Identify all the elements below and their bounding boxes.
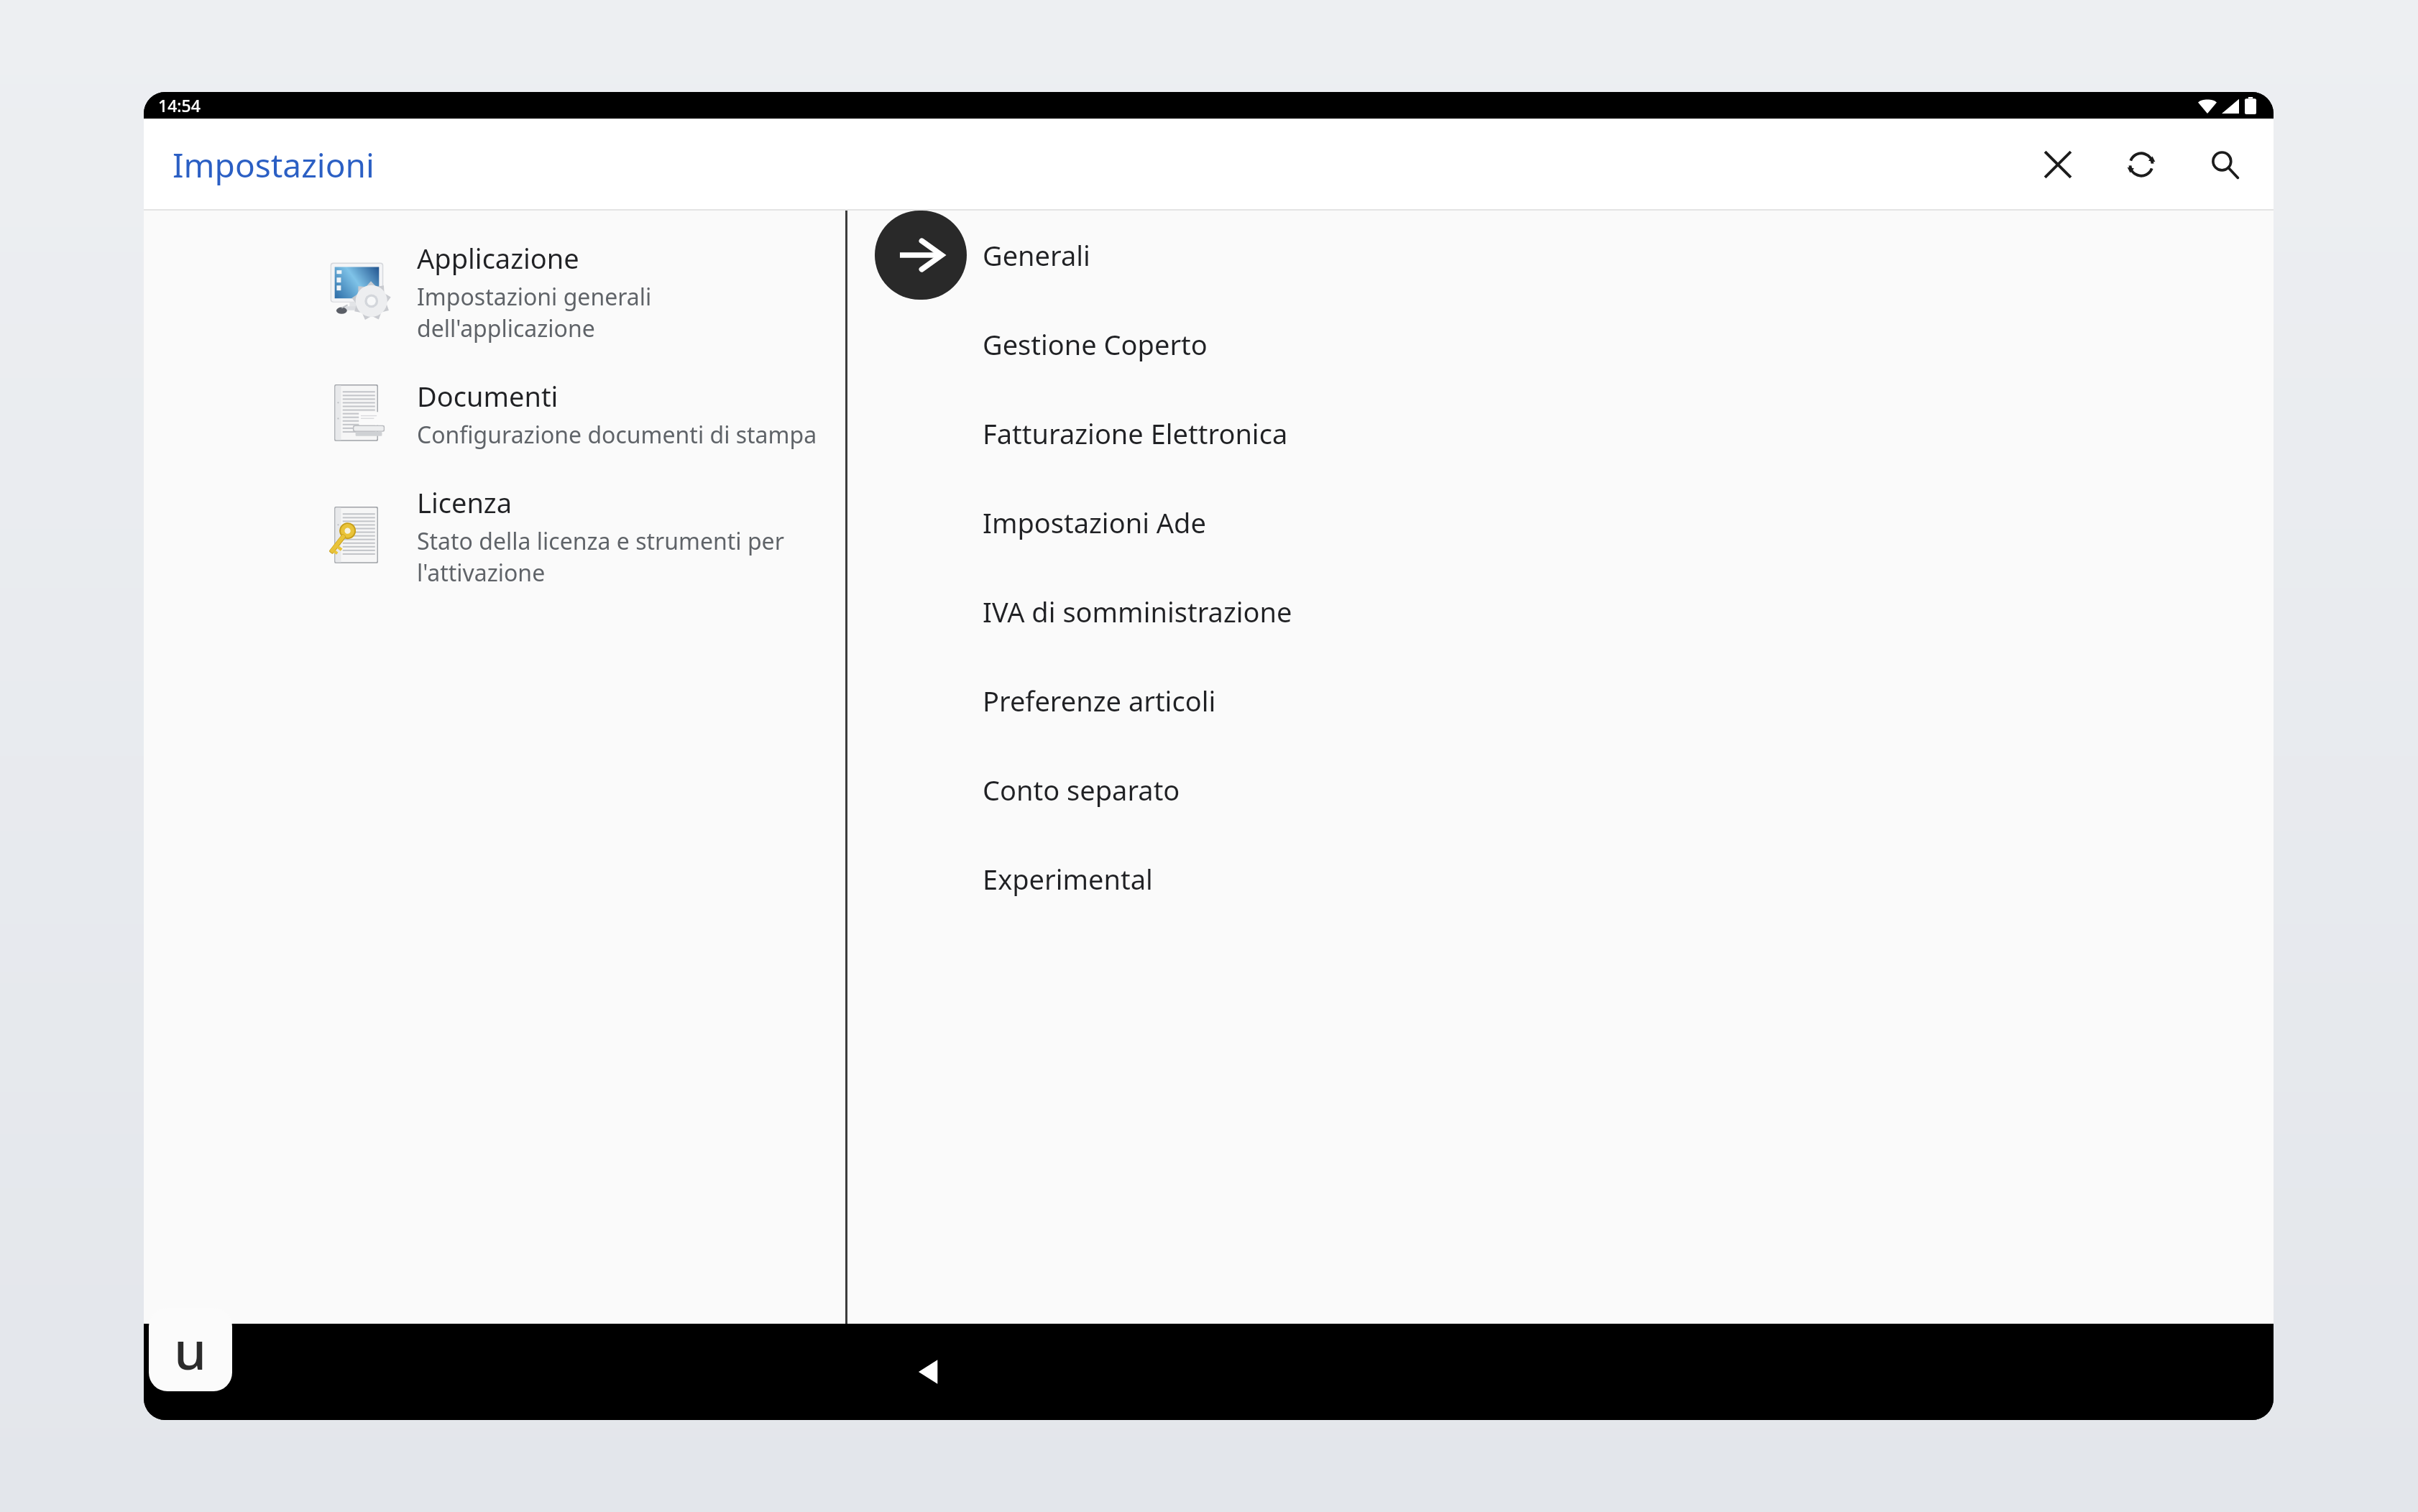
button[interactable]: Fatturazione Elettronica <box>847 389 2274 478</box>
staticText: Generali <box>983 236 1090 274</box>
button[interactable]: Close <box>2028 134 2088 195</box>
staticText: Stato della licenza e strumenti per l'at… <box>417 525 828 589</box>
button[interactable]: Refresh <box>2111 134 2171 195</box>
staticText: u <box>174 1314 207 1385</box>
staticText: Preferenze articoli <box>983 682 1216 719</box>
staticText: Impostazioni <box>173 142 374 188</box>
staticText: Conto separato <box>983 771 1180 808</box>
button[interactable]: Conto separato <box>847 745 2274 834</box>
button[interactable]: Preferenze articoli <box>847 656 2274 745</box>
button[interactable]: Applicazione <box>144 231 845 353</box>
button[interactable]: Impostazioni Ade <box>847 478 2274 567</box>
staticText: Documenti <box>417 377 558 415</box>
button[interactable]: Generali <box>847 211 2274 300</box>
staticText: Licenza <box>417 484 512 521</box>
button[interactable]: Back <box>896 1340 961 1404</box>
staticText: Impostazioni Ade <box>983 504 1206 541</box>
button[interactable]: Licenza <box>144 475 845 597</box>
staticText: Impostazioni generali dell'applicazione <box>417 281 828 344</box>
staticText: Experimental <box>983 860 1153 898</box>
staticText: Fatturazione Elettronica <box>983 415 1288 452</box>
button[interactable]: Gestione Coperto <box>847 300 2274 389</box>
staticText: IVA di somministrazione <box>983 593 1292 630</box>
staticText: 14:54 <box>158 94 201 116</box>
button[interactable]: IVA di somministrazione <box>847 567 2274 656</box>
staticText: Configurazione documenti di stampa <box>417 419 817 451</box>
button[interactable]: App launcher <box>149 1308 232 1391</box>
staticText: Gestione Coperto <box>983 326 1208 363</box>
staticText: Applicazione <box>417 239 579 277</box>
button[interactable]: Experimental <box>847 834 2274 923</box>
button[interactable]: Documenti <box>144 353 845 475</box>
button[interactable]: Search <box>2194 134 2255 195</box>
